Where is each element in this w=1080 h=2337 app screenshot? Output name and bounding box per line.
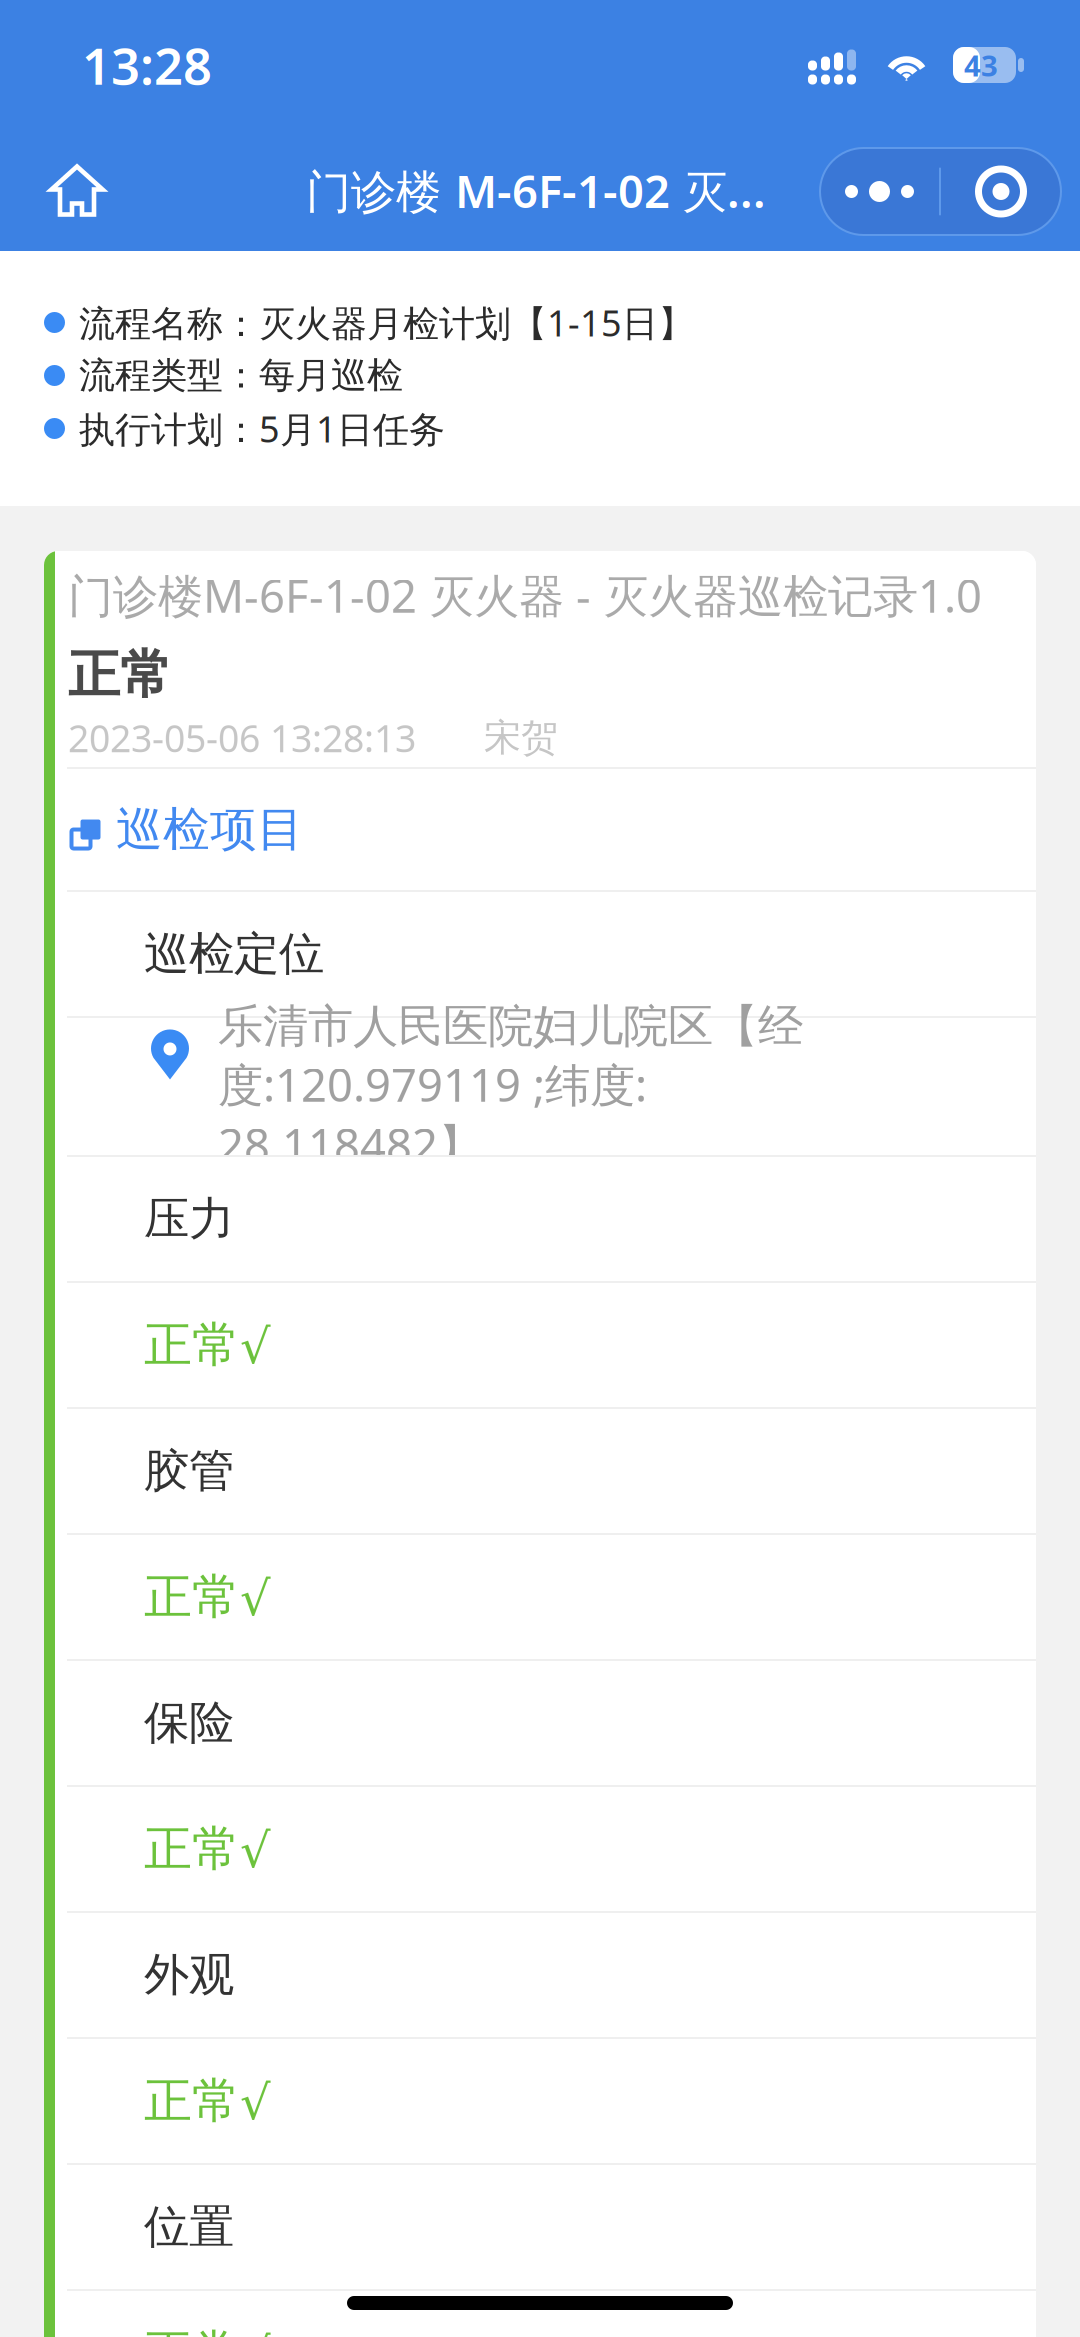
staticText: 乐清市人民医院妇儿院区【经度:120.979119 ;纬度: 28.118482… (218, 998, 803, 1175)
staticText: 胶管 (144, 1443, 234, 1499)
staticText: 正常√ (144, 1567, 271, 1626)
button[interactable]: 压力 (55, 1157, 1036, 1281)
staticText: 13:28 (82, 31, 212, 99)
staticText: 门诊楼M-6F-1-02 灭火器 - 灭火器巡检记录1.0 (68, 565, 982, 625)
button[interactable]: 正常√ (55, 1787, 1036, 1911)
button[interactable]: 正常√ (55, 1535, 1036, 1659)
button[interactable]: Home (23, 130, 131, 251)
staticText: 压力 (144, 1191, 234, 1247)
staticText: 2023-05-06 13:28:13 (68, 713, 416, 763)
staticText: 正常√ (144, 2323, 271, 2337)
staticText: 流程类型：每月巡检 (79, 353, 403, 398)
button[interactable]: 正常√ (55, 2039, 1036, 2163)
button[interactable]: 位置 (55, 2165, 1036, 2289)
staticText: 正常√ (144, 1315, 271, 1374)
staticText: 外观 (144, 1947, 234, 2003)
staticText: 流程名称：灭火器月检计划【1-15日】 (79, 299, 694, 346)
staticText: 保险 (144, 1695, 234, 1751)
staticText: 宋贺 (484, 715, 558, 761)
staticText: 位置 (144, 2199, 234, 2255)
button[interactable]: 巡检定位 (55, 892, 1036, 1016)
staticText: 正常√ (144, 1819, 271, 1878)
button[interactable]: 外观 (55, 1913, 1036, 2037)
button[interactable]: 正常√ (55, 1283, 1036, 1407)
button[interactable]: Close mini program (941, 148, 1061, 235)
staticText: 正常 (68, 643, 172, 707)
staticText: 门诊楼 M-6F-1-02 灭... (306, 160, 766, 221)
button[interactable]: 保险 (55, 1661, 1036, 1785)
staticText: 巡检项目 (116, 801, 304, 858)
button[interactable]: 正常√ (55, 2291, 1036, 2337)
staticText: 43 (964, 45, 998, 84)
button[interactable]: 巡检项目 (55, 769, 1036, 890)
staticText: 巡检定位 (144, 926, 324, 982)
staticText: 执行计划：5月1日任务 (79, 405, 445, 452)
button[interactable]: 胶管 (55, 1409, 1036, 1533)
button[interactable]: More options (820, 148, 939, 235)
staticText: 正常√ (144, 2071, 271, 2130)
